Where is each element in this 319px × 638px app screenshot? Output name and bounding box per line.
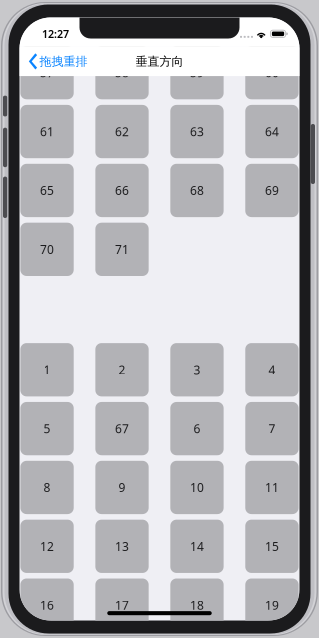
staticText: 6 (193, 421, 200, 436)
staticText: 69 (265, 182, 279, 198)
staticText: 71 (115, 241, 129, 257)
button[interactable]: 14 (170, 520, 224, 573)
button[interactable]: 拖拽重排 (19, 47, 94, 76)
button[interactable]: 17 (95, 578, 149, 632)
staticText: 12:27 (42, 27, 69, 41)
staticText: 58 (115, 65, 129, 81)
staticText: 60 (265, 65, 279, 81)
button[interactable]: 71 (95, 223, 149, 276)
staticText: 17 (115, 597, 129, 613)
staticText: 10 (190, 479, 204, 495)
staticText: 7 (268, 421, 275, 436)
staticText: 61 (40, 124, 54, 139)
staticText: 拖拽重排 (40, 54, 88, 69)
button[interactable]: 19 (245, 578, 299, 632)
button[interactable]: 11 (245, 461, 299, 514)
button[interactable]: 62 (95, 105, 149, 158)
button[interactable]: 4 (245, 343, 299, 396)
staticText: 垂直方向 (135, 54, 183, 69)
button[interactable]: 13 (95, 520, 149, 573)
staticText: 18 (190, 597, 204, 613)
staticText: 13 (115, 538, 129, 554)
button[interactable]: 5 (20, 402, 74, 455)
button[interactable]: 70 (20, 223, 74, 276)
button[interactable]: 16 (20, 578, 74, 632)
staticText: 1 (43, 362, 50, 378)
button[interactable]: 64 (245, 105, 299, 158)
staticText: 70 (40, 241, 54, 257)
staticText: 62 (115, 124, 129, 139)
staticText: 11 (265, 479, 279, 495)
button[interactable]: 60 (245, 46, 299, 99)
button[interactable]: 8 (20, 461, 74, 514)
button[interactable]: 1 (20, 343, 74, 396)
button[interactable]: 6 (170, 402, 224, 455)
button[interactable]: 69 (245, 164, 299, 217)
staticText: 9 (118, 479, 125, 495)
staticText: 66 (115, 182, 129, 198)
staticText: 65 (40, 182, 54, 198)
button[interactable]: 18 (170, 578, 224, 632)
staticText: 8 (43, 479, 50, 495)
button[interactable]: 63 (170, 105, 224, 158)
staticText: 64 (265, 124, 279, 139)
staticText: 19 (265, 597, 279, 613)
staticText: 4 (268, 362, 275, 378)
button[interactable]: 59 (170, 46, 224, 99)
staticText: 63 (190, 124, 204, 139)
button[interactable]: 10 (170, 461, 224, 514)
staticText: 14 (190, 538, 204, 554)
staticText: 2 (118, 362, 125, 378)
staticText: 16 (40, 597, 54, 613)
button[interactable]: 9 (95, 461, 149, 514)
button[interactable]: 61 (20, 105, 74, 158)
button[interactable]: 3 (170, 343, 224, 396)
button[interactable]: 7 (245, 402, 299, 455)
button[interactable]: 15 (245, 520, 299, 573)
staticText: 5 (43, 421, 50, 436)
button[interactable]: 57 (20, 46, 74, 99)
staticText: 57 (40, 65, 54, 81)
staticText: 3 (193, 362, 200, 378)
button[interactable]: 67 (95, 402, 149, 455)
staticText: 15 (265, 538, 279, 554)
button[interactable]: 65 (20, 164, 74, 217)
button[interactable]: 2 (95, 343, 149, 396)
staticText: 59 (190, 65, 204, 81)
button[interactable]: 68 (170, 164, 224, 217)
button[interactable]: 58 (95, 46, 149, 99)
staticText: 12 (40, 538, 54, 554)
staticText: 68 (190, 182, 204, 198)
button[interactable]: 12 (20, 520, 74, 573)
staticText: 67 (115, 421, 129, 436)
button[interactable]: 66 (95, 164, 149, 217)
